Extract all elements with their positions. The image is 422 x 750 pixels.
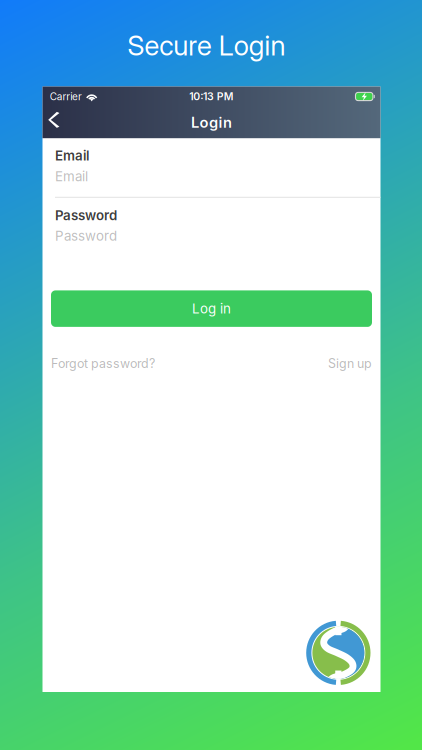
- staticText: Forgot password?: [51, 356, 155, 371]
- staticText: Password: [55, 207, 117, 223]
- staticText: Email: [55, 168, 88, 184]
- staticText: Log in: [192, 301, 231, 317]
- button[interactable]: Back: [42, 107, 69, 137]
- staticText: Carrier: [50, 90, 82, 103]
- staticText: Email: [55, 148, 89, 164]
- button[interactable]: Forgot password?: [51, 356, 155, 371]
- staticText: 10:13 PM: [189, 90, 234, 103]
- button[interactable]: Sign up: [328, 356, 372, 371]
- staticText: Secure Login: [127, 29, 285, 62]
- staticText: Password: [55, 228, 117, 244]
- staticText: Login: [191, 113, 232, 131]
- button[interactable]: Log in: [51, 290, 372, 327]
- staticText: Sign up: [328, 356, 372, 371]
